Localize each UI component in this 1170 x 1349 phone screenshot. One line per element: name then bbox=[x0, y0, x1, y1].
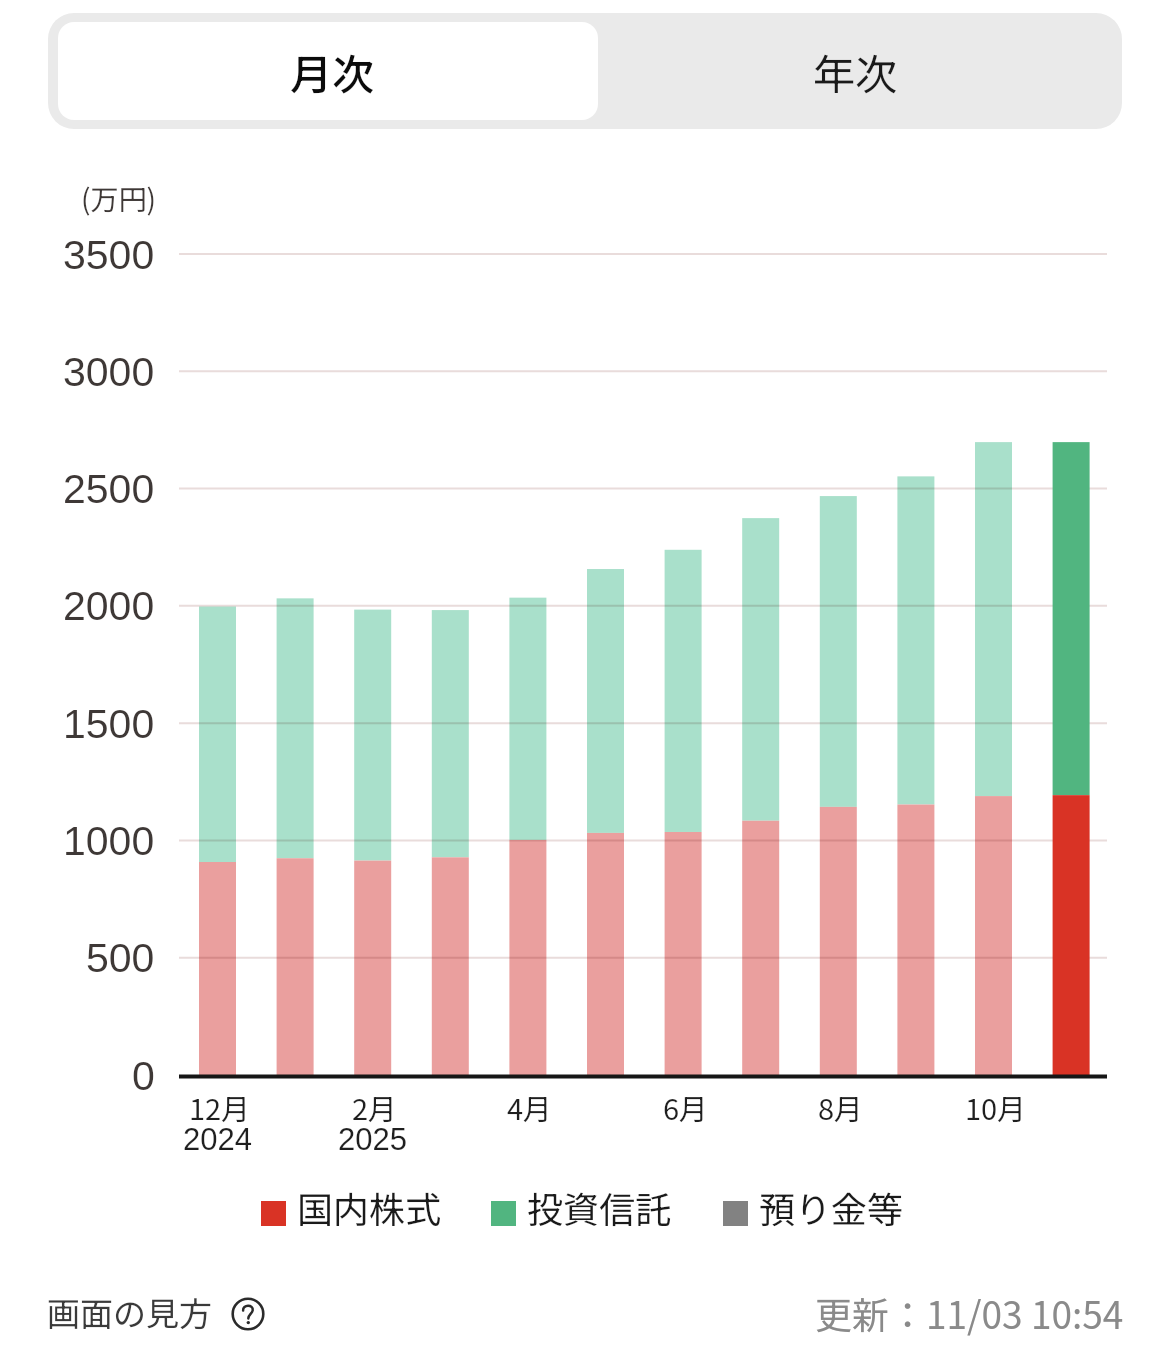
button[interactable]: 投資信託 bbox=[485, 1188, 679, 1238]
staticText: 1500 bbox=[63, 701, 155, 747]
staticText: 0 bbox=[132, 1053, 155, 1099]
staticText: 2000 bbox=[63, 583, 155, 629]
staticText: 預り金等 bbox=[759, 1181, 904, 1231]
button[interactable]: 国内株式 bbox=[255, 1188, 449, 1238]
staticText: 2024 bbox=[183, 1122, 252, 1157]
staticText: 月次 bbox=[290, 41, 375, 102]
staticText: 2500 bbox=[63, 466, 155, 512]
staticText: 投資信託 bbox=[527, 1181, 672, 1231]
staticText: 2月 bbox=[352, 1086, 398, 1128]
other: ヘルプ bbox=[230, 1296, 266, 1332]
staticText: 1000 bbox=[63, 818, 155, 864]
staticText: 2025 bbox=[338, 1122, 407, 1157]
staticText: 国内株式 bbox=[297, 1181, 442, 1231]
staticText: 3500 bbox=[63, 232, 155, 278]
button[interactable]: 預り金等 bbox=[717, 1188, 911, 1238]
staticText: 更新：11/03 10:54 bbox=[815, 1286, 1124, 1340]
staticText: 8月 bbox=[818, 1086, 864, 1128]
staticText: (万円) bbox=[81, 178, 156, 219]
staticText: 年次 bbox=[813, 41, 898, 102]
button[interactable]: 月次 bbox=[58, 22, 598, 120]
staticText: 500 bbox=[86, 935, 155, 981]
staticText: 画面の見方 bbox=[47, 1288, 212, 1332]
staticText: 6月 bbox=[663, 1086, 709, 1128]
staticText: 3000 bbox=[63, 349, 155, 395]
staticText: 12月 bbox=[189, 1086, 251, 1128]
button[interactable]: 画面の見方 bbox=[47, 1288, 266, 1332]
staticText: 4月 bbox=[507, 1086, 553, 1128]
staticText: 10月 bbox=[965, 1086, 1027, 1128]
button[interactable]: 年次 bbox=[598, 13, 1112, 129]
